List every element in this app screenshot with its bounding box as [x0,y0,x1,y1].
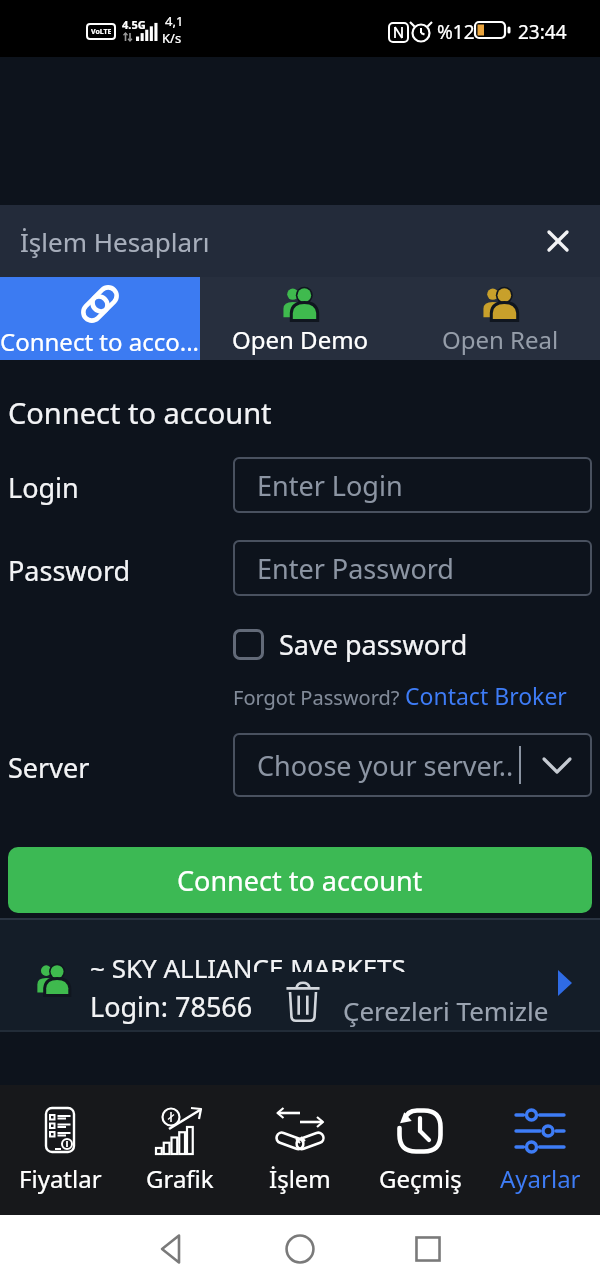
staticText: Forgot Password? [233,684,405,711]
staticText: 4,1 [165,12,184,30]
staticText: Contact Broker [405,680,567,711]
staticText: Connect to acco... [0,325,200,358]
staticText: Enter Login [257,467,403,504]
staticText: Connect to account [177,862,423,899]
staticText: ~ SKY ALLIANCE MARKETS [90,950,406,985]
button[interactable]: Ayarlar [480,1085,600,1215]
button[interactable]: Open Real [400,277,600,360]
staticText: VoLTE [91,27,112,37]
button[interactable]: Connect to acco... [0,277,200,360]
staticText: 4.5G [122,17,146,32]
staticText: Save password [279,626,468,663]
staticText: Password [8,552,131,589]
staticText: Grafik [146,1162,214,1195]
staticText: Fiyatlar [19,1162,102,1195]
staticText: İşlem Hesapları [20,224,210,259]
button[interactable] [412,1233,444,1265]
staticText: 23:44 [518,19,567,45]
staticText: Connect to account [8,393,272,432]
button[interactable]: Save password [233,626,468,663]
staticText: K/s [162,29,182,47]
button[interactable]: Geçmiş [360,1085,480,1215]
staticText: İşlem [269,1162,331,1195]
staticText: Ayarlar [500,1162,581,1195]
staticText: Geçmiş [379,1162,462,1195]
button[interactable] [155,1233,187,1265]
button[interactable]: Enter Password [233,540,592,596]
button[interactable] [284,1233,316,1265]
button[interactable]: Fiyatlar [0,1085,120,1215]
button[interactable]: İşlem [240,1085,360,1215]
button[interactable]: Choose your server.. [233,733,592,797]
button[interactable] [540,223,576,259]
button[interactable]: Open Demo [200,277,400,360]
staticText: Login: 78566 [90,988,253,1025]
staticText: Çerezleri Temizle [343,993,549,1028]
staticText: Enter Password [257,550,454,587]
button[interactable]: ~ SKY ALLIANCE MARKETS [0,918,600,1032]
staticText: Login [8,469,79,506]
staticText: Open Demo [232,323,369,356]
staticText: Open Real [442,323,559,356]
button[interactable]: Contact Broker [405,680,567,711]
button[interactable]: Connect to account [8,847,592,913]
staticText: %12 [437,19,475,45]
staticText: Choose your server.. [257,747,514,784]
button[interactable]: Enter Login [233,457,592,513]
button[interactable]: Grafik [120,1085,240,1215]
staticText: Server [8,749,90,786]
